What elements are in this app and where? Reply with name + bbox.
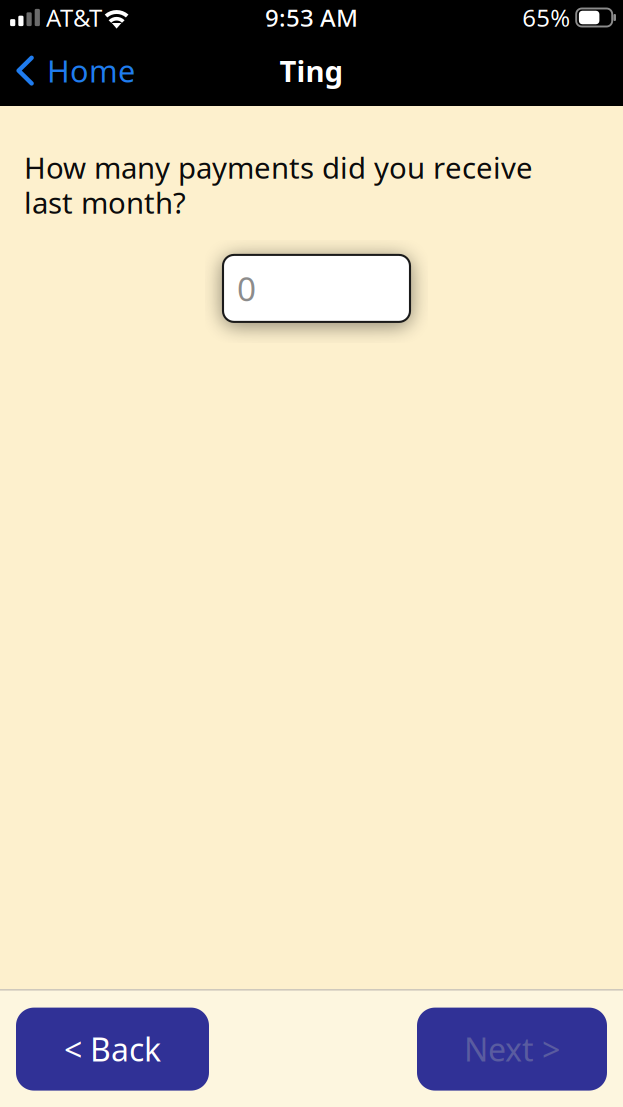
button[interactable]: < Back [16,1008,209,1091]
staticText: 9:53 AM [265,2,358,33]
staticText: Home [47,50,135,91]
staticText: How many payments did you receive last m… [24,148,533,222]
button[interactable]: Home [0,41,145,100]
staticText: AT&T [46,2,102,33]
button[interactable]: Next > [417,1008,607,1091]
staticText: Ting [279,51,343,90]
staticText: 0 [237,266,256,311]
staticText: Next > [464,1028,560,1070]
staticText: < Back [64,1028,161,1070]
staticText: 65% [522,2,570,33]
button[interactable]: Number of payments received last month [223,255,410,322]
